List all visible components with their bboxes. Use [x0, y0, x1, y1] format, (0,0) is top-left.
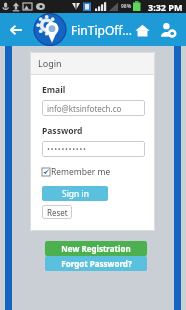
- staticText: Login: [38, 57, 62, 69]
- staticText: info@ktsinfotech.co: [47, 103, 122, 114]
- button[interactable]: Sign in: [42, 186, 108, 201]
- button[interactable]: Forgot Password?: [45, 256, 147, 271]
- button[interactable]: info@ktsinfotech.co: [47, 100, 140, 116]
- button[interactable]: Account settings: [156, 18, 180, 42]
- staticText: Reset: [47, 207, 68, 218]
- button[interactable]: [47, 141, 140, 157]
- staticText: Remember me: [51, 166, 111, 178]
- staticText: Sign in: [62, 188, 89, 200]
- staticText: FinTipOff...: [71, 22, 132, 38]
- staticText: 98%: [121, 3, 132, 10]
- button[interactable]: New Registration: [45, 241, 147, 256]
- staticText: Email: [42, 84, 66, 96]
- button[interactable]: Reset: [42, 205, 72, 219]
- button[interactable]: Home: [131, 19, 153, 41]
- staticText: 3:32 PM: [148, 1, 183, 13]
- button[interactable]: Back: [4, 18, 28, 42]
- button[interactable]: Remember me: [42, 166, 111, 178]
- staticText: Forgot Password?: [61, 258, 132, 269]
- staticText: New Registration: [61, 243, 131, 254]
- staticText: Password: [42, 125, 83, 137]
